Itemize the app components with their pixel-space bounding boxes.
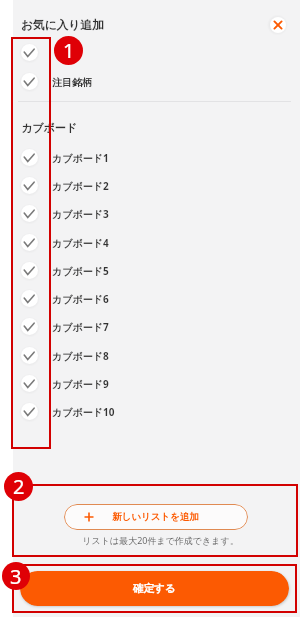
button[interactable]: 閉じる [267,14,288,35]
button[interactable]: カブボード5 [0,257,300,285]
button[interactable]: カブボード4 [0,229,300,257]
staticText: 注目銘柄 [52,76,92,89]
staticText: カブボード2 [52,179,109,193]
button[interactable]: カブボード3 [0,200,300,228]
staticText: カブボード9 [52,377,109,391]
staticText: カブボード6 [52,292,109,306]
staticText: カブボード [21,121,78,135]
staticText: カブボード4 [52,236,109,250]
staticText: カブボード5 [52,264,109,278]
button[interactable] [0,39,300,67]
staticText: 2 [13,473,25,500]
button[interactable]: カブボード10 [0,398,300,426]
staticText: 1 [63,37,75,64]
button[interactable]: カブボード1 [0,144,300,172]
staticText: カブボード3 [52,207,109,221]
button[interactable]: 注目銘柄 [0,68,300,96]
staticText: 3 [10,563,22,590]
button[interactable]: カブボード9 [0,370,300,398]
button[interactable]: カブボード2 [0,172,300,200]
button[interactable]: カブボード7 [0,313,300,341]
button[interactable]: カブボード8 [0,342,300,370]
staticText: お気に入り追加 [21,18,104,33]
staticText: カブボード1 [52,151,109,165]
button[interactable]: 新しいリストを追加 [64,504,248,530]
button[interactable]: カブボード6 [0,285,300,313]
button[interactable]: 確定する [20,571,289,606]
staticText: 確定する [133,582,176,595]
staticText: 新しいリストを追加 [112,511,199,523]
staticText: カブボード7 [52,320,109,334]
staticText: カブボード8 [52,349,109,363]
staticText: カブボード10 [52,405,115,419]
staticText: リストは最大20件まで作成できます。 [82,534,239,546]
